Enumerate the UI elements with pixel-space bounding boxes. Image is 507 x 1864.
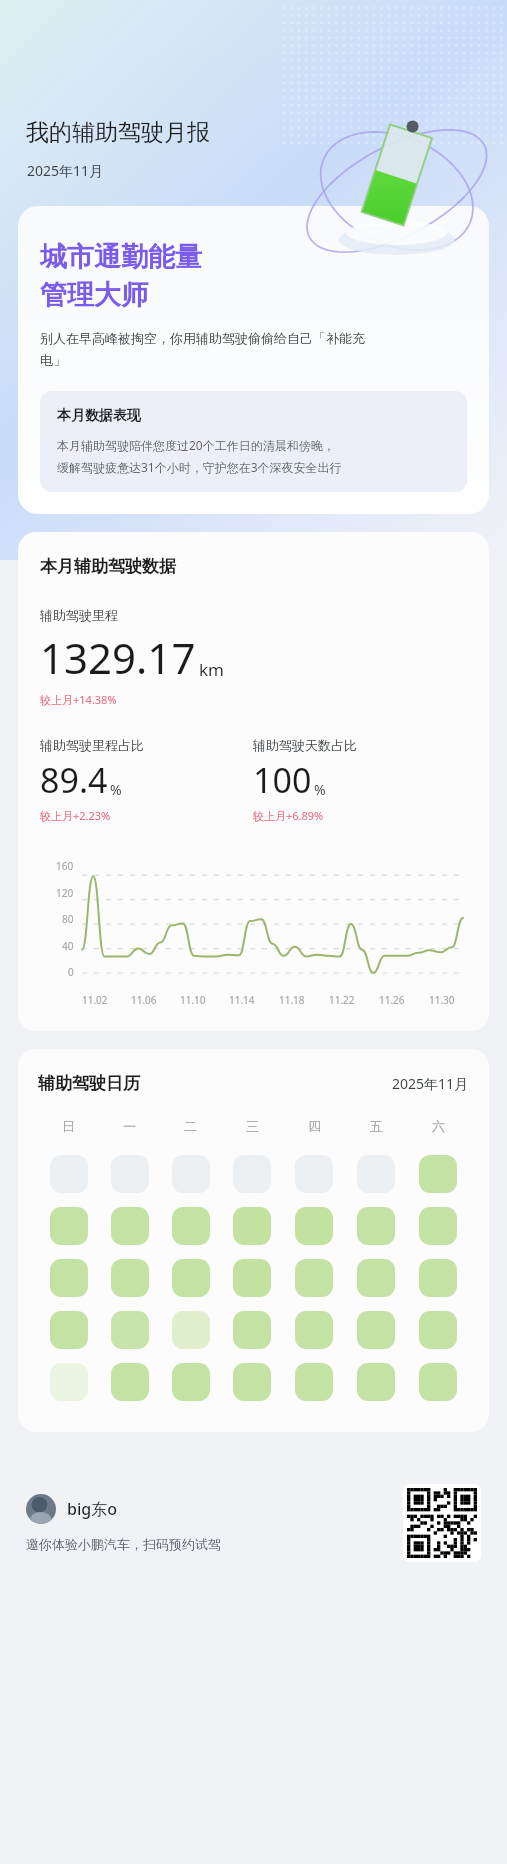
button[interactable]	[50, 1311, 88, 1349]
staticText: 本月辅助驾驶陪伴您度过20个工作日的清晨和傍晚， 缓解驾驶疲惫达31个小时，守护…	[57, 437, 342, 476]
staticText: 六	[432, 1118, 445, 1134]
button[interactable]	[50, 1363, 88, 1401]
staticText: 邀你体验小鹏汽车，扫码预约试驾	[26, 1536, 221, 1552]
button[interactable]	[50, 1207, 88, 1245]
staticText: 辅助驾驶里程占比	[40, 737, 144, 753]
staticText: 11.30	[429, 993, 455, 1007]
button[interactable]	[357, 1363, 395, 1401]
button[interactable]	[233, 1363, 271, 1401]
staticText: 三	[246, 1118, 259, 1134]
staticText: 城市通勤能量	[40, 240, 202, 274]
staticText: 2025年11月	[27, 161, 104, 180]
staticText: 二	[184, 1118, 197, 1134]
staticText: 辅助驾驶里程	[40, 607, 118, 623]
button[interactable]	[111, 1155, 149, 1193]
button[interactable]	[172, 1259, 210, 1297]
staticText: 辅助驾驶天数占比	[253, 737, 357, 753]
button[interactable]	[50, 1155, 88, 1193]
button[interactable]: big东o	[26, 1494, 117, 1524]
button[interactable]	[111, 1363, 149, 1401]
staticText: 80	[62, 912, 74, 926]
button[interactable]	[419, 1259, 457, 1297]
staticText: 本月数据表现	[57, 407, 141, 425]
staticText: 本月辅助驾驶数据	[40, 556, 176, 577]
staticText: 11.22	[329, 993, 355, 1007]
staticText: 五	[370, 1118, 383, 1134]
button[interactable]: 扫码预约试驾二维码	[403, 1484, 481, 1562]
staticText: big东o	[67, 1498, 117, 1520]
button[interactable]	[419, 1363, 457, 1401]
staticText: 11.26	[379, 993, 405, 1007]
button[interactable]: 本月辅助驾驶数据	[18, 532, 489, 1031]
button[interactable]	[419, 1207, 457, 1245]
staticText: %	[110, 780, 122, 799]
button[interactable]	[172, 1207, 210, 1245]
staticText: 较上月+14.38%	[40, 692, 117, 707]
staticText: km	[199, 658, 224, 681]
button[interactable]: 辅助驾驶日历	[18, 1049, 489, 1432]
staticText: 我的辅助驾驶月报	[26, 118, 210, 147]
staticText: 别人在早高峰被掏空，你用辅助驾驶偷偷给自己「补能充 电」	[40, 330, 365, 369]
button[interactable]	[172, 1363, 210, 1401]
button[interactable]	[172, 1155, 210, 1193]
button[interactable]	[111, 1311, 149, 1349]
staticText: 11.14	[229, 993, 255, 1007]
staticText: 管理大师	[40, 278, 148, 312]
staticText: 四	[308, 1118, 321, 1134]
button[interactable]	[295, 1311, 333, 1349]
button[interactable]	[50, 1259, 88, 1297]
staticText: 一	[123, 1118, 136, 1134]
staticText: 100	[253, 757, 312, 803]
button[interactable]	[419, 1311, 457, 1349]
staticText: 11.18	[279, 993, 305, 1007]
button[interactable]	[357, 1311, 395, 1349]
button[interactable]	[419, 1155, 457, 1193]
staticText: 日	[62, 1118, 75, 1134]
staticText: 11.10	[180, 993, 206, 1007]
button[interactable]	[233, 1259, 271, 1297]
button[interactable]	[172, 1311, 210, 1349]
staticText: 120	[56, 886, 74, 900]
button[interactable]	[295, 1259, 333, 1297]
button[interactable]	[357, 1259, 395, 1297]
button[interactable]	[111, 1207, 149, 1245]
staticText: 1329.17	[40, 629, 196, 686]
button[interactable]	[233, 1207, 271, 1245]
staticText: 11.02	[82, 993, 108, 1007]
button[interactable]	[111, 1259, 149, 1297]
staticText: 0	[68, 965, 74, 979]
staticText: 11.06	[131, 993, 157, 1007]
staticText: 较上月+2.23%	[40, 808, 111, 823]
staticText: 2025年11月	[392, 1074, 469, 1093]
staticText: 40	[62, 939, 74, 953]
staticText: 较上月+6.89%	[253, 808, 324, 823]
staticText: 160	[56, 859, 74, 873]
button[interactable]	[295, 1155, 333, 1193]
button[interactable]	[295, 1207, 333, 1245]
staticText: 89.4	[40, 757, 108, 803]
button[interactable]	[233, 1311, 271, 1349]
staticText: 辅助驾驶日历	[38, 1073, 140, 1094]
button[interactable]	[233, 1155, 271, 1193]
button[interactable]	[357, 1155, 395, 1193]
staticText: %	[314, 780, 326, 799]
button[interactable]: 城市通勤能量	[18, 206, 489, 514]
button[interactable]	[357, 1207, 395, 1245]
button[interactable]	[295, 1363, 333, 1401]
